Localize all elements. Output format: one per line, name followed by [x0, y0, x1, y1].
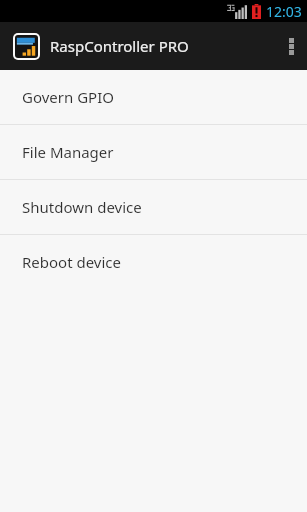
button[interactable]: More options [275, 22, 307, 70]
staticText: RaspController PRO [50, 36, 189, 56]
button[interactable]: Govern GPIO [0, 70, 307, 124]
staticText: Shutdown device [22, 197, 142, 217]
staticText: Govern GPIO [22, 87, 114, 107]
staticText: Reboot device [22, 252, 122, 272]
button[interactable]: Reboot device [0, 235, 307, 289]
button[interactable]: File Manager [0, 125, 307, 179]
staticText: File Manager [22, 142, 114, 162]
button[interactable]: Shutdown device [0, 180, 307, 234]
staticText: 12:03 [266, 2, 302, 21]
